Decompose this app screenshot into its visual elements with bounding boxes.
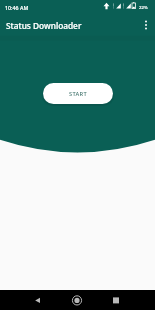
button[interactable]: More options bbox=[136, 14, 155, 36]
staticText: Status Downloader bbox=[6, 20, 82, 31]
staticText: 10:46 AM bbox=[5, 4, 29, 11]
button[interactable]: Recent apps bbox=[106, 290, 127, 310]
button[interactable]: Home bbox=[67, 290, 88, 310]
staticText: 22% bbox=[139, 4, 148, 10]
button[interactable]: START bbox=[43, 83, 113, 104]
button[interactable]: Back bbox=[27, 290, 48, 310]
staticText: START bbox=[69, 90, 87, 98]
